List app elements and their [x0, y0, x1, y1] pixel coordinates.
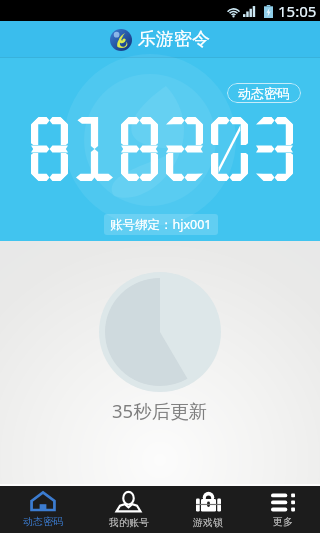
- staticText: 乐游密令: [138, 28, 210, 51]
- staticText: 35秒后更新: [112, 398, 208, 423]
- button[interactable]: 我的账号: [86, 486, 171, 533]
- staticText: 账号绑定：hjx001: [110, 216, 212, 233]
- button[interactable]: 动态密码: [0, 486, 86, 533]
- staticText: 我的账号: [109, 516, 149, 529]
- other: 更多: [271, 492, 295, 511]
- button[interactable]: 账号绑定：hjx001: [104, 214, 218, 235]
- button[interactable]: 更多: [245, 486, 320, 533]
- staticText: 动态密码: [23, 515, 63, 528]
- button[interactable]: 动态密码: [227, 83, 301, 103]
- staticText: 更多: [273, 515, 293, 528]
- other: 我的账号: [116, 491, 141, 512]
- staticText: 动态密码: [238, 85, 290, 101]
- staticText: 游戏锁: [193, 516, 223, 529]
- other: 游戏锁: [196, 491, 221, 512]
- button[interactable]: 游戏锁: [171, 486, 245, 533]
- staticText: 15:05: [278, 1, 317, 21]
- other: 动态密码: [30, 491, 56, 511]
